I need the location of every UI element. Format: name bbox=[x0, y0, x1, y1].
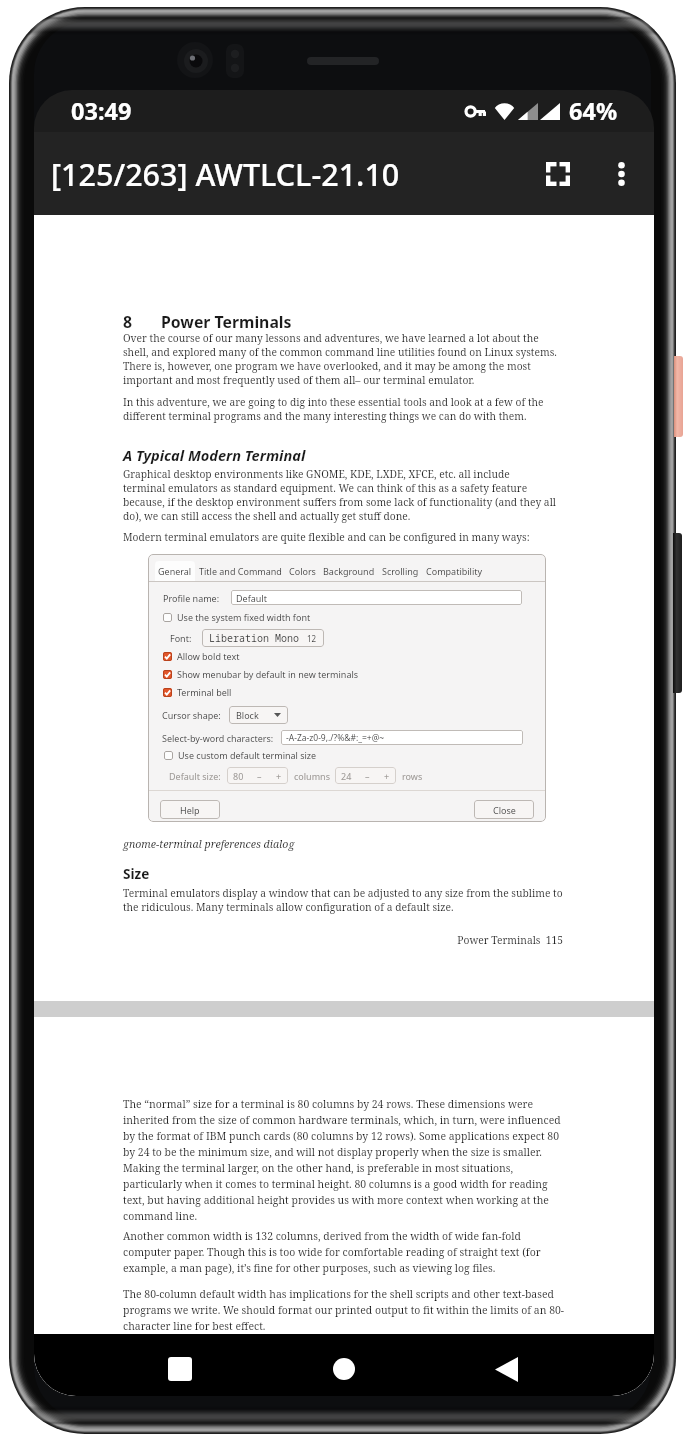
staticText: [125/263] AWTLCL-21.10 bbox=[51, 153, 400, 195]
button[interactable]: Title and Command bbox=[196, 561, 285, 581]
staticText: Terminal emulators display a window that… bbox=[123, 886, 563, 914]
button[interactable]: Home bbox=[316, 1339, 372, 1396]
button[interactable]: Scrolling bbox=[379, 561, 422, 581]
button[interactable]: Allow bold text bbox=[163, 650, 240, 662]
button[interactable]: 24 bbox=[335, 767, 396, 784]
button[interactable]: Background bbox=[320, 561, 378, 581]
button[interactable]: Colors bbox=[286, 561, 319, 581]
button[interactable]: Use the system fixed width font bbox=[163, 611, 311, 623]
button[interactable]: Terminal bell bbox=[163, 686, 232, 698]
staticText: 24 bbox=[341, 770, 352, 782]
button[interactable]: Recent apps bbox=[152, 1339, 208, 1396]
staticText: Profile name: bbox=[163, 592, 220, 604]
staticText: A Typical Modern Terminal bbox=[123, 445, 306, 465]
staticText: The 80-column default width has implicat… bbox=[123, 1287, 565, 1333]
staticText: Title and Command bbox=[199, 565, 282, 577]
button[interactable]: More options bbox=[593, 144, 649, 204]
staticText: Power Terminals 115 bbox=[123, 933, 563, 947]
staticText: – bbox=[365, 770, 370, 782]
staticText: Use the system fixed width font bbox=[177, 611, 311, 623]
staticText: gnome-terminal preferences dialog bbox=[123, 837, 295, 851]
staticText: 03:49 bbox=[71, 95, 132, 127]
staticText: Block bbox=[236, 709, 259, 721]
staticText: Cursor shape: bbox=[162, 709, 221, 721]
staticText: Font: bbox=[170, 632, 192, 644]
staticText: Close bbox=[493, 804, 516, 816]
button[interactable]: Use custom default terminal size bbox=[164, 749, 317, 761]
staticText: + bbox=[384, 770, 390, 782]
staticText: Another common width is 132 columns, der… bbox=[123, 1229, 541, 1275]
staticText: Help bbox=[180, 804, 200, 816]
staticText: Show menubar by default in new terminals bbox=[177, 668, 359, 680]
staticText: Allow bold text bbox=[177, 650, 240, 662]
staticText: 8 bbox=[123, 311, 133, 333]
staticText: columns bbox=[294, 770, 330, 782]
staticText: Compatibility bbox=[426, 565, 483, 577]
staticText: Graphical desktop environments like GNOM… bbox=[123, 467, 556, 523]
staticText: Use custom default terminal size bbox=[178, 749, 317, 761]
staticText: Size bbox=[123, 864, 150, 883]
staticText: 80 bbox=[233, 770, 244, 782]
button[interactable]: Close bbox=[474, 800, 534, 819]
staticText: 64% bbox=[569, 95, 618, 127]
staticText: -A-Za-z0-9,./?%&#:_=+@~ bbox=[286, 732, 385, 744]
staticText: General bbox=[158, 565, 192, 577]
staticText: Terminal bell bbox=[177, 686, 232, 698]
staticText: In this adventure, we are going to dig i… bbox=[123, 395, 544, 423]
staticText: Default bbox=[236, 592, 267, 604]
button[interactable]: Block bbox=[229, 706, 288, 724]
button[interactable]: Show menubar by default in new terminals bbox=[163, 668, 359, 680]
button[interactable]: Compatibility bbox=[423, 561, 486, 581]
button[interactable]: 80 bbox=[227, 767, 288, 784]
staticText: Colors bbox=[289, 565, 316, 577]
staticText: The “normal” size for a terminal is 80 c… bbox=[123, 1097, 561, 1223]
button[interactable]: Help bbox=[160, 800, 220, 819]
button[interactable]: Liberation Mono bbox=[202, 629, 324, 647]
staticText: Modern terminal emulators are quite flex… bbox=[123, 530, 530, 544]
staticText: rows bbox=[402, 770, 423, 782]
button[interactable]: Back bbox=[478, 1339, 534, 1396]
button[interactable]: Enter fullscreen bbox=[530, 144, 586, 204]
staticText: Over the course of our many lessons and … bbox=[123, 331, 557, 387]
staticText: Liberation Mono bbox=[209, 631, 299, 645]
button[interactable]: General bbox=[155, 561, 195, 581]
staticText: Select-by-word characters: bbox=[162, 732, 274, 744]
staticText: Scrolling bbox=[382, 565, 419, 577]
staticText: Default size: bbox=[169, 770, 221, 782]
staticText: 12 bbox=[307, 633, 317, 644]
staticText: Power Terminals bbox=[161, 311, 292, 333]
staticText: Background bbox=[323, 565, 375, 577]
staticText: + bbox=[276, 770, 282, 782]
staticText: – bbox=[257, 770, 262, 782]
